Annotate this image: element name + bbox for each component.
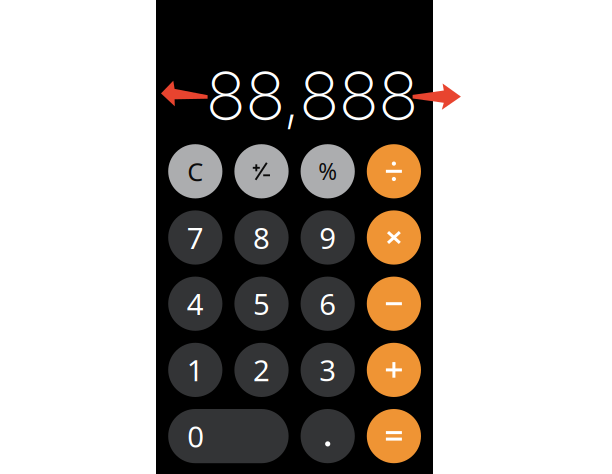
staticText: 9 xyxy=(319,218,336,257)
staticText: 1 xyxy=(187,350,204,389)
button[interactable]: 3 xyxy=(301,343,355,397)
button[interactable]: Plus minus xyxy=(234,144,289,198)
button[interactable]: Divide xyxy=(367,144,421,198)
button[interactable]: 7 xyxy=(168,210,222,265)
button[interactable]: 8 xyxy=(234,210,289,265)
button[interactable]: % xyxy=(301,144,355,198)
button[interactable]: Equals xyxy=(367,409,421,463)
button[interactable]: Decimal point xyxy=(301,409,355,463)
staticText: 0 xyxy=(187,417,204,456)
button[interactable]: 1 xyxy=(168,343,222,397)
staticText: 2 xyxy=(253,350,270,389)
staticText: 6 xyxy=(319,284,336,323)
button[interactable]: 5 xyxy=(234,277,289,331)
staticText: % xyxy=(318,156,337,186)
button[interactable]: Multiply xyxy=(367,210,421,265)
button[interactable]: 0 xyxy=(168,409,289,463)
button[interactable]: 9 xyxy=(301,210,355,265)
button[interactable]: 6 xyxy=(301,277,355,331)
staticText: C xyxy=(187,154,203,188)
staticText: 3 xyxy=(319,350,336,389)
staticText: 88,888 xyxy=(208,56,416,136)
button[interactable]: C xyxy=(168,144,222,198)
staticText: 7 xyxy=(187,218,204,257)
button[interactable]: 4 xyxy=(168,277,222,331)
button[interactable]: Plus xyxy=(367,343,421,397)
staticText: 8 xyxy=(253,218,270,257)
button[interactable]: 2 xyxy=(234,343,289,397)
button[interactable]: Minus xyxy=(367,277,421,331)
staticText: 4 xyxy=(187,284,204,323)
staticText: 5 xyxy=(253,284,270,323)
